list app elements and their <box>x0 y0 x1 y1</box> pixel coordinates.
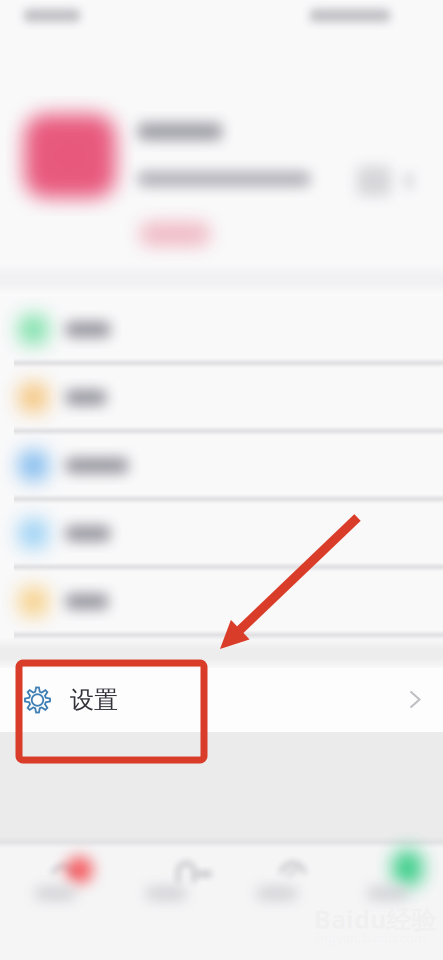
button[interactable]: List item <box>0 432 443 500</box>
button[interactable]: List item <box>0 296 443 364</box>
button[interactable]: List item <box>0 364 443 432</box>
button[interactable]: Profile <box>0 0 443 250</box>
button[interactable]: Messages <box>0 843 111 960</box>
button[interactable]: List item <box>0 568 443 636</box>
button[interactable]: Mine <box>332 843 443 960</box>
staticText: 设置 <box>70 685 118 715</box>
button[interactable]: Contacts <box>111 843 222 960</box>
button[interactable]: List item <box>0 500 443 568</box>
button[interactable]: Discover <box>221 843 332 960</box>
button[interactable]: 设置 <box>0 668 443 732</box>
